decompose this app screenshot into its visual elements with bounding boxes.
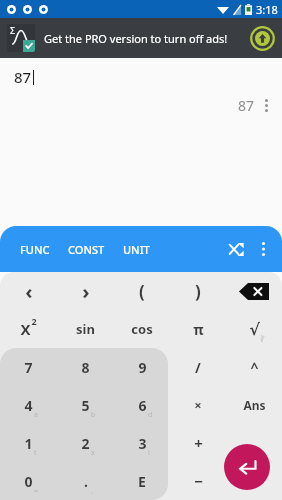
button[interactable]: 2 xyxy=(57,424,114,462)
button[interactable]: 6 xyxy=(114,386,170,424)
button[interactable]: / xyxy=(170,348,226,386)
button[interactable]: Equals xyxy=(224,444,270,490)
button[interactable]: 8 xyxy=(57,348,114,386)
staticText: / xyxy=(195,358,201,377)
button[interactable]: 5 xyxy=(57,386,114,424)
button[interactable]: E xyxy=(114,462,170,500)
staticText: Ans xyxy=(243,397,266,413)
button[interactable]: − xyxy=(170,462,226,500)
button[interactable]: + xyxy=(170,424,226,462)
staticText: 0 xyxy=(24,472,33,491)
button[interactable]: × xyxy=(170,386,226,424)
button[interactable]: ^ xyxy=(226,348,282,386)
staticText: 2 xyxy=(81,434,90,453)
staticText: x xyxy=(91,448,95,458)
staticText: π xyxy=(193,320,204,339)
staticText: Get the PRO version to turn off ads! xyxy=(44,31,250,46)
button[interactable]: CONST xyxy=(68,235,105,264)
button[interactable]: Result options xyxy=(255,94,277,116)
staticText: 87 xyxy=(238,96,255,115)
staticText: 2 xyxy=(31,315,37,327)
button[interactable]: FUNC xyxy=(20,235,50,264)
button[interactable]: X xyxy=(0,310,57,348)
button[interactable]: π xyxy=(170,310,226,348)
staticText: Σ xyxy=(10,24,16,36)
staticText: E xyxy=(138,472,146,491)
button[interactable]: sin xyxy=(57,310,114,348)
button[interactable]: 9 xyxy=(114,348,170,386)
staticText: , xyxy=(91,486,93,496)
button[interactable]: ) xyxy=(170,272,226,310)
staticText: 3:18 xyxy=(256,2,278,17)
staticText: 8 xyxy=(81,358,90,377)
button[interactable]: 0 xyxy=(0,462,57,500)
button[interactable]: ‹ xyxy=(0,272,57,310)
staticText: = xyxy=(34,486,39,496)
staticText: 3 xyxy=(138,434,147,453)
staticText: sin xyxy=(76,320,95,338)
button[interactable]: Shuffle xyxy=(222,235,250,263)
staticText: 6 xyxy=(138,396,147,415)
staticText: UNIT xyxy=(123,242,150,257)
staticText: 9 xyxy=(138,358,147,377)
staticText: 7 xyxy=(24,358,33,377)
staticText: √ xyxy=(249,320,260,339)
button[interactable]: 4 xyxy=(0,386,57,424)
staticText: × xyxy=(194,396,202,414)
button[interactable]: cos xyxy=(114,310,170,348)
staticText: d xyxy=(148,410,153,420)
staticText: + xyxy=(194,433,203,453)
staticText: i xyxy=(148,448,150,458)
staticText: b xyxy=(91,410,96,420)
button[interactable]: More options xyxy=(250,236,276,262)
staticText: cos xyxy=(131,320,153,338)
staticText: 1 xyxy=(24,434,33,453)
staticText: a xyxy=(34,410,38,420)
button[interactable]: UNIT xyxy=(123,235,150,264)
staticText: ∛ xyxy=(260,336,265,344)
staticText: t xyxy=(34,448,37,458)
button[interactable]: Ans xyxy=(226,386,282,424)
staticText: ‹ xyxy=(25,278,33,305)
staticText: CONST xyxy=(68,242,105,257)
staticText: 4 xyxy=(24,396,33,415)
button[interactable]: Upgrade to PRO version xyxy=(250,26,275,51)
button[interactable]: 3 xyxy=(114,424,170,462)
staticText: › xyxy=(82,278,90,305)
staticText: FUNC xyxy=(20,242,50,257)
staticText: X xyxy=(20,319,31,339)
button[interactable]: Backspace xyxy=(226,272,282,310)
staticText: ^ xyxy=(250,358,259,377)
staticText: ( xyxy=(139,280,145,303)
staticText: − xyxy=(194,471,203,491)
button[interactable]: . xyxy=(57,462,114,500)
button[interactable]: › xyxy=(57,272,114,310)
button[interactable]: √ xyxy=(226,310,282,348)
button[interactable]: 7 xyxy=(0,348,57,386)
button[interactable]: ( xyxy=(114,272,170,310)
staticText: 87 xyxy=(14,67,32,87)
staticText: . xyxy=(84,472,88,491)
button[interactable]: Σ xyxy=(0,18,282,58)
staticText: ) xyxy=(195,280,201,303)
button[interactable]: 1 xyxy=(0,424,57,462)
staticText: 5 xyxy=(81,396,90,415)
